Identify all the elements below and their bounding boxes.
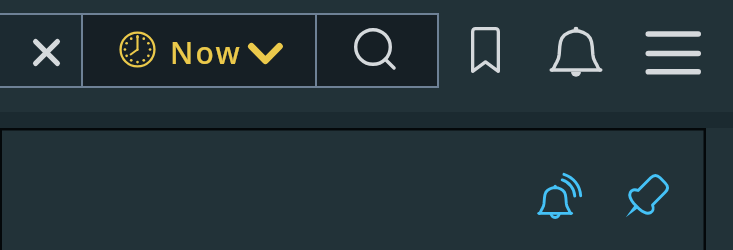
button[interactable] <box>83 13 315 88</box>
button[interactable]: Close <box>0 13 81 88</box>
button[interactable]: Bookmark <box>460 18 510 82</box>
button[interactable]: Menu <box>637 20 709 82</box>
button[interactable]: Search <box>317 13 437 88</box>
button[interactable]: Notifications <box>546 18 606 84</box>
button[interactable]: Notification alerts <box>531 166 588 225</box>
button[interactable]: Pin <box>620 166 675 224</box>
staticText: Now <box>170 32 242 73</box>
